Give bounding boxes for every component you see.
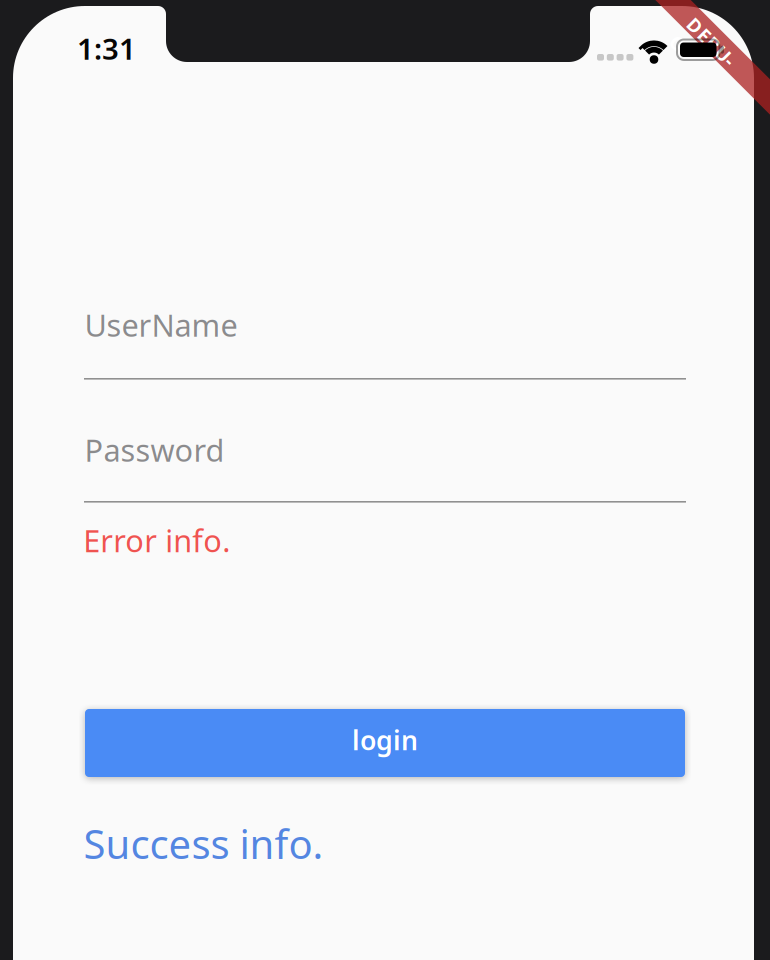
staticText: Success info. [83, 817, 323, 870]
staticText: login [352, 722, 418, 758]
staticText: UserName [84, 304, 237, 345]
staticText: 1:31 [77, 29, 136, 68]
button[interactable]: login [85, 709, 685, 777]
staticText: Error info. [83, 520, 230, 561]
staticText: Password [84, 429, 224, 470]
staticText: DEBUG [680, 38, 749, 62]
